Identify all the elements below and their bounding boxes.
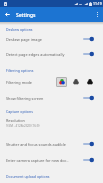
button[interactable]: Resolution xyxy=(0,115,103,129)
staticText: Deskew page image xyxy=(6,37,82,42)
button[interactable]: Black and white mode xyxy=(84,77,95,87)
button[interactable]: Show filtering screen xyxy=(0,91,103,105)
button[interactable]: More options xyxy=(92,7,103,22)
staticText: Show filtering screen xyxy=(6,96,82,101)
staticText: 4G xyxy=(79,2,83,5)
staticText: Shutter and focus sounds audible xyxy=(6,142,82,147)
button[interactable]: Greyscale mode xyxy=(70,77,81,87)
staticText: Filtering mode xyxy=(6,80,32,85)
button[interactable]: Shutter and focus sounds audible xyxy=(0,137,103,151)
button[interactable]: Navigate up xyxy=(1,7,13,22)
button[interactable]: Deskew page image xyxy=(0,32,103,46)
staticText: Document upload options xyxy=(6,174,50,179)
button[interactable]: Detect page edges automatically xyxy=(0,47,103,61)
staticText: Settings xyxy=(16,12,36,19)
staticText: Filtering options xyxy=(6,68,34,73)
staticText: 11:19 xyxy=(93,1,102,6)
staticText: Capture options xyxy=(6,109,33,114)
staticText: Resolution xyxy=(6,118,25,123)
button[interactable]: Colour mode xyxy=(56,77,67,87)
staticText: Deskew options xyxy=(6,27,33,32)
staticText: Detect page edges automatically xyxy=(6,52,82,57)
staticText: Enter camera capture for new doc.. xyxy=(6,158,82,163)
button[interactable]: Enter camera capture for new doc.. xyxy=(0,153,103,167)
staticText: 9.5M - 4128x2320 (16:9) xyxy=(6,124,40,128)
